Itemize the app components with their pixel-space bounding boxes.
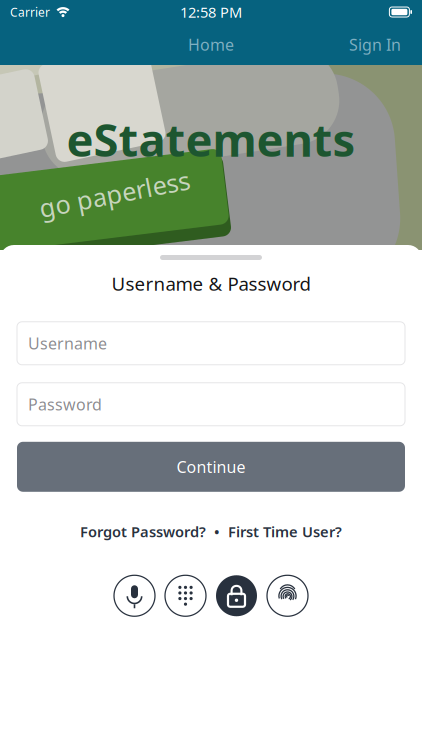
staticText: First Time User? bbox=[228, 522, 342, 541]
button[interactable]: Home bbox=[178, 28, 244, 61]
button[interactable]: Username bbox=[17, 322, 405, 365]
staticText: Password bbox=[28, 394, 102, 415]
button[interactable]: Touch ID sign in bbox=[267, 575, 308, 616]
button[interactable]: Sign In bbox=[339, 28, 411, 61]
staticText: go paperless bbox=[38, 177, 191, 211]
staticText: Continue bbox=[176, 456, 245, 477]
button[interactable]: Secure sign in bbox=[216, 575, 257, 616]
button[interactable]: First Time User? bbox=[228, 522, 342, 541]
staticText: Carrier bbox=[10, 4, 50, 20]
staticText: Sign In bbox=[349, 34, 401, 55]
staticText: Username & Password bbox=[111, 271, 310, 296]
staticText: eStatements bbox=[66, 109, 355, 169]
button[interactable]: Voice sign in bbox=[114, 575, 155, 616]
button[interactable]: Forgot Password? bbox=[80, 522, 206, 541]
staticText: 12:58 PM bbox=[180, 2, 242, 22]
button[interactable]: Password bbox=[17, 383, 405, 426]
button[interactable]: Continue bbox=[17, 442, 405, 492]
staticText: • bbox=[206, 522, 228, 541]
button[interactable]: Passcode sign in bbox=[165, 575, 206, 616]
staticText: Username bbox=[28, 333, 107, 354]
staticText: Forgot Password? bbox=[80, 522, 206, 541]
staticText: Home bbox=[188, 34, 234, 55]
